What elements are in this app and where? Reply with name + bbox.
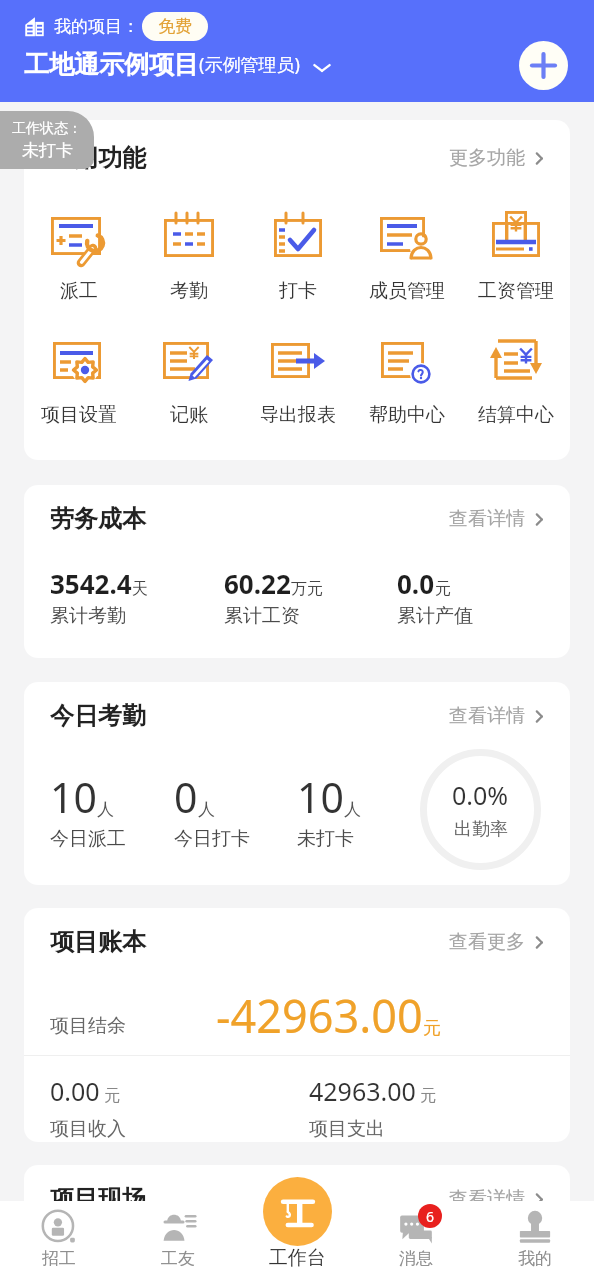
- staticText: 今日考勤: [50, 701, 146, 731]
- button[interactable]: 查看详情: [449, 1187, 548, 1211]
- staticText: 工资管理: [478, 279, 554, 303]
- button[interactable]: 查看更多: [449, 930, 548, 954]
- button[interactable]: 记账: [134, 332, 243, 427]
- staticText: 考勤: [170, 279, 208, 303]
- staticText: 招工: [42, 1248, 76, 1269]
- staticText: 项目支出: [309, 1117, 385, 1141]
- staticText: 项目账本: [50, 927, 146, 957]
- staticText: 项目现场: [50, 1184, 146, 1214]
- button[interactable]: 项目设置: [24, 332, 134, 427]
- staticText: 元: [416, 1084, 437, 1106]
- button[interactable]: 查看详情: [449, 507, 548, 531]
- staticText: 工作状态：: [12, 120, 82, 138]
- staticText: 今日派工: [50, 827, 126, 851]
- button[interactable]: 成员管理: [352, 208, 461, 303]
- staticText: 10: [50, 769, 97, 825]
- staticText: 元: [435, 579, 451, 599]
- staticText: 结算中心: [478, 403, 554, 427]
- staticText: 更多功能: [449, 146, 525, 170]
- button[interactable]: 我的: [475, 1201, 594, 1269]
- button[interactable]: 帮助中心: [352, 332, 461, 427]
- staticText: 工作台: [269, 1246, 326, 1270]
- staticText: 常用功能: [50, 143, 146, 173]
- staticText: 我的项目：: [54, 16, 139, 37]
- staticText: 消息: [399, 1248, 433, 1269]
- staticText: 6: [426, 1207, 435, 1226]
- staticText: 记账: [170, 403, 208, 427]
- button[interactable]: 6: [356, 1201, 475, 1269]
- button[interactable]: 更多功能: [449, 146, 548, 170]
- staticText: 工友: [161, 1248, 195, 1269]
- staticText: 打卡: [279, 279, 317, 303]
- staticText: 人: [344, 799, 361, 820]
- staticText: 项目设置: [41, 403, 117, 427]
- staticText: 累计产值: [397, 604, 473, 628]
- staticText: 0.0%: [452, 778, 509, 812]
- button[interactable]: 结算中心: [461, 332, 570, 427]
- staticText: 导出报表: [260, 403, 336, 427]
- staticText: 未打卡: [22, 140, 73, 161]
- staticText: 0: [174, 769, 198, 825]
- staticText: 劳务成本: [50, 504, 146, 534]
- staticText: 免费: [158, 16, 192, 37]
- staticText: 人: [97, 799, 114, 820]
- staticText: 查看详情: [449, 1187, 525, 1211]
- button[interactable]: 工作台: [263, 1177, 332, 1246]
- staticText: 累计工资: [224, 604, 300, 628]
- staticText: 0.00: [50, 1074, 100, 1108]
- button[interactable]: 新建项目: [519, 41, 568, 90]
- staticText: 查看详情: [449, 704, 525, 728]
- staticText: 10: [297, 769, 344, 825]
- staticText: 派工: [60, 279, 98, 303]
- button[interactable]: 查看详情: [449, 704, 548, 728]
- staticText: 我的: [518, 1248, 552, 1269]
- staticText: 60.22: [224, 566, 291, 601]
- staticText: 万元: [291, 579, 323, 599]
- staticText: 项目收入: [50, 1117, 126, 1141]
- staticText: 累计考勤: [50, 604, 126, 628]
- staticText: 查看详情: [449, 507, 525, 531]
- button[interactable]: 工友: [118, 1201, 237, 1269]
- staticText: 3542.4: [50, 566, 132, 601]
- button[interactable]: 工资管理: [461, 208, 570, 303]
- staticText: 工地通示例项目: [24, 49, 199, 80]
- staticText: 人: [198, 799, 215, 820]
- staticText: 出勤率: [454, 818, 508, 841]
- staticText: -42963.00: [216, 985, 423, 1046]
- staticText: 天: [132, 579, 148, 599]
- staticText: (示例管理员): [199, 52, 300, 77]
- staticText: 成员管理: [369, 279, 445, 303]
- staticText: 0.0: [397, 566, 435, 601]
- staticText: 未打卡: [297, 827, 354, 851]
- staticText: 元: [423, 1017, 441, 1040]
- staticText: 查看更多: [449, 930, 525, 954]
- button[interactable]: 打卡: [243, 208, 352, 303]
- button[interactable]: 招工: [0, 1201, 118, 1269]
- button[interactable]: 工作状态：: [0, 111, 94, 169]
- staticText: 42963.00: [309, 1074, 416, 1108]
- button[interactable]: 派工: [24, 208, 134, 303]
- staticText: 帮助中心: [369, 403, 445, 427]
- staticText: 今日打卡: [174, 827, 250, 851]
- button[interactable]: 考勤: [134, 208, 243, 303]
- button[interactable]: 导出报表: [243, 332, 352, 427]
- staticText: 元: [100, 1084, 121, 1106]
- staticText: 项目结余: [50, 1014, 126, 1038]
